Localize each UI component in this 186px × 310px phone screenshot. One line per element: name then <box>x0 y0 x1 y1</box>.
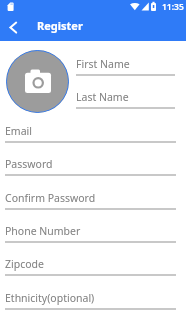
staticText: Register <box>37 18 83 33</box>
staticText: First Name <box>76 57 130 71</box>
staticText: Email <box>5 124 32 138</box>
staticText: Zipcode <box>5 257 44 271</box>
staticText: Confirm Password <box>5 191 96 205</box>
staticText: Ethnicity(optional) <box>5 291 95 305</box>
button[interactable]: Email <box>5 116 176 143</box>
button[interactable]: Ethnicity(optional) <box>5 283 176 310</box>
button[interactable]: Password <box>5 149 176 176</box>
staticText: 11:35 <box>162 1 184 13</box>
button[interactable]: Zipcode <box>5 249 176 276</box>
staticText: Last Name <box>76 90 129 104</box>
staticText: Phone Number <box>5 224 81 238</box>
staticText: Password <box>5 157 53 171</box>
button[interactable] <box>0 12 30 41</box>
button[interactable]: Phone Number <box>5 216 176 243</box>
button[interactable]: Confirm Password <box>5 183 176 210</box>
button[interactable] <box>6 50 69 113</box>
button[interactable]: First Name <box>76 49 175 76</box>
button[interactable]: Last Name <box>76 82 175 109</box>
